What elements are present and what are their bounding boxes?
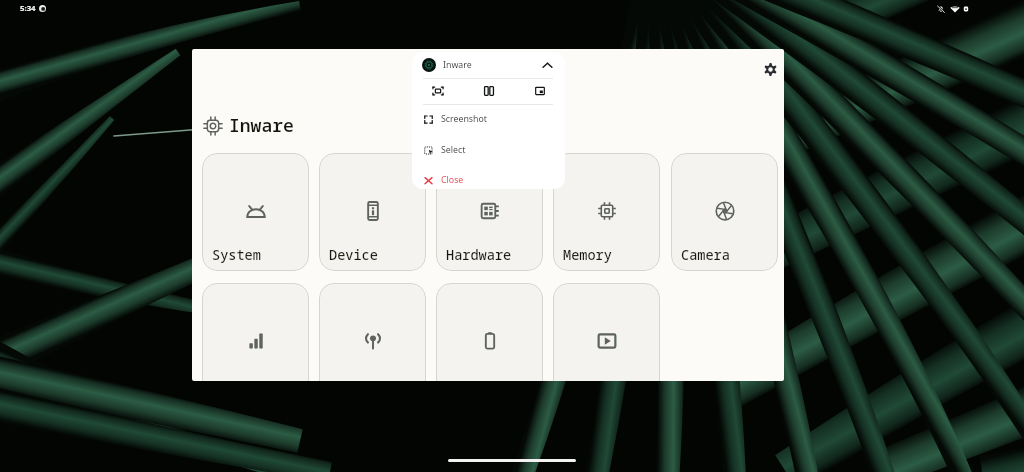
- button[interactable]: Collapse: [540, 58, 554, 72]
- staticText: System: [212, 245, 261, 264]
- button[interactable]: Memory: [553, 153, 660, 271]
- button[interactable]: Hardware: [436, 153, 543, 271]
- button[interactable]: Split screen: [463, 79, 514, 103]
- button[interactable]: Fullscreen: [412, 79, 463, 103]
- staticText: Screenshot: [441, 113, 488, 125]
- staticText: Select: [441, 144, 466, 156]
- button[interactable]: Camera: [671, 153, 778, 271]
- button[interactable]: Settings: [757, 56, 783, 82]
- button[interactable]: Screenshot: [423, 104, 565, 134]
- staticText: Inware: [443, 59, 472, 71]
- button[interactable]: Section: [436, 283, 543, 381]
- button[interactable]: Section: [319, 283, 426, 381]
- staticText: Device: [329, 245, 378, 264]
- button[interactable]: Close: [423, 165, 565, 189]
- staticText: Camera: [681, 245, 730, 264]
- button[interactable]: Inware: [422, 52, 554, 78]
- button[interactable]: Section: [202, 283, 309, 381]
- staticText: 5:34: [20, 3, 36, 14]
- button[interactable]: Picture in picture: [514, 79, 565, 103]
- staticText: Memory: [563, 245, 612, 264]
- staticText: Inware: [229, 113, 294, 138]
- button[interactable]: Section: [553, 283, 660, 381]
- button[interactable]: System: [202, 153, 309, 271]
- button[interactable]: Device: [319, 153, 426, 271]
- staticText: Close: [441, 174, 464, 186]
- button[interactable]: Select: [423, 135, 565, 165]
- staticText: Hardware: [446, 245, 512, 264]
